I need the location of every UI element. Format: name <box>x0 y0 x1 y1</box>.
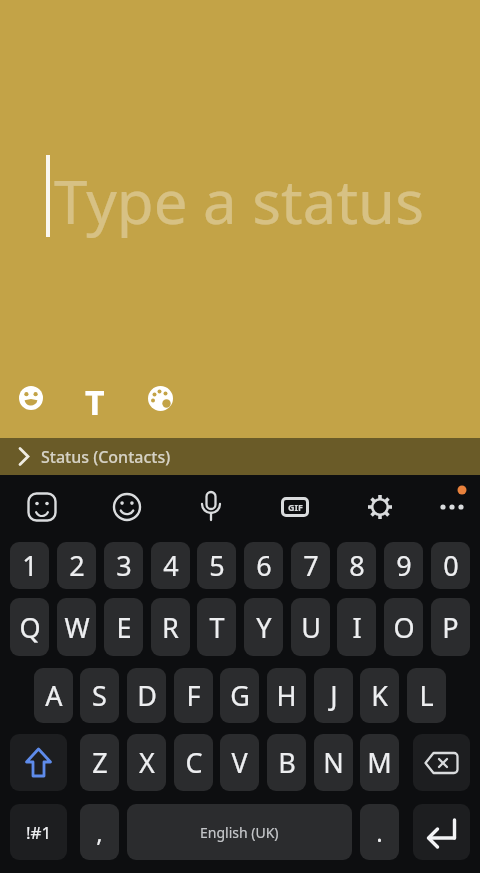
button[interactable] <box>428 483 476 531</box>
staticText: GIF <box>288 501 303 513</box>
button[interactable]: M <box>360 734 399 791</box>
button[interactable]: Status (Contacts) <box>0 438 480 475</box>
button[interactable]: J <box>314 668 353 723</box>
button[interactable]: L <box>407 668 446 723</box>
staticText: 3 <box>116 547 132 584</box>
staticText: !#1 <box>26 821 52 844</box>
button[interactable]: K <box>360 668 399 723</box>
staticText: F <box>186 677 201 714</box>
button[interactable] <box>187 483 235 531</box>
button[interactable]: S <box>80 668 119 723</box>
button[interactable]: 1 <box>10 542 49 589</box>
staticText: Y <box>256 609 272 646</box>
button[interactable]: !#1 <box>10 804 67 860</box>
staticText: 0 <box>443 547 459 584</box>
staticText: Status (Contacts) <box>41 446 171 468</box>
button[interactable] <box>413 734 470 791</box>
button[interactable]: R <box>151 598 190 656</box>
button[interactable]: A <box>34 668 73 723</box>
staticText: 9 <box>396 547 412 584</box>
staticText: C <box>185 744 203 781</box>
staticText: T <box>209 609 225 646</box>
button[interactable]: I <box>337 598 376 656</box>
button[interactable] <box>10 734 67 791</box>
button[interactable]: C <box>174 734 213 791</box>
button[interactable]: H <box>267 668 306 723</box>
staticText: E <box>116 609 132 646</box>
button[interactable]: U <box>291 598 330 656</box>
button[interactable]: E <box>104 598 143 656</box>
button[interactable]: X <box>127 734 166 791</box>
button[interactable]: F <box>174 668 213 723</box>
button[interactable]: 7 <box>291 542 330 589</box>
button[interactable]: B <box>267 734 306 791</box>
staticText: H <box>276 677 297 714</box>
button[interactable]: English (UK) <box>127 804 352 860</box>
staticText: A <box>45 677 63 714</box>
button[interactable]: W <box>57 598 96 656</box>
staticText: W <box>64 609 90 646</box>
staticText: 7 <box>303 547 319 584</box>
button[interactable]: N <box>314 734 353 791</box>
staticText: G <box>230 677 250 714</box>
staticText: J <box>330 677 338 714</box>
staticText: 5 <box>209 547 225 584</box>
button[interactable]: T <box>76 379 114 417</box>
staticText: B <box>278 744 296 781</box>
button[interactable] <box>356 483 404 531</box>
button[interactable]: T <box>197 598 236 656</box>
button[interactable] <box>141 379 179 417</box>
staticText: S <box>92 677 107 714</box>
button[interactable]: 0 <box>431 542 470 589</box>
staticText: N <box>323 744 344 781</box>
staticText: T <box>85 379 105 417</box>
staticText: 6 <box>256 547 272 584</box>
staticText: I <box>352 609 362 646</box>
staticText: Q <box>19 609 41 646</box>
button[interactable]: Y <box>244 598 283 656</box>
button[interactable]: G <box>220 668 259 723</box>
button[interactable] <box>12 379 50 417</box>
button[interactable]: 3 <box>104 542 143 589</box>
staticText: English (UK) <box>200 823 279 842</box>
button[interactable]: O <box>384 598 423 656</box>
button[interactable]: D <box>127 668 166 723</box>
staticText: X <box>139 744 155 781</box>
staticText: 8 <box>349 547 365 584</box>
staticText: R <box>162 609 179 646</box>
button[interactable]: Q <box>10 598 49 656</box>
button[interactable]: 8 <box>337 542 376 589</box>
button[interactable]: V <box>220 734 259 791</box>
button[interactable] <box>18 483 66 531</box>
staticText: M <box>367 744 392 781</box>
staticText: K <box>371 677 388 714</box>
staticText: 1 <box>22 547 38 584</box>
button[interactable]: 4 <box>151 542 190 589</box>
staticText: 4 <box>163 547 179 584</box>
staticText: 2 <box>69 547 85 584</box>
button[interactable] <box>271 483 319 531</box>
staticText: . <box>376 816 383 849</box>
staticText: P <box>442 609 459 646</box>
button[interactable]: 2 <box>57 542 96 589</box>
staticText: , <box>96 816 103 849</box>
staticText: V <box>231 744 248 781</box>
staticText: D <box>137 677 157 714</box>
button[interactable] <box>103 483 151 531</box>
staticText: O <box>393 609 415 646</box>
button[interactable]: . <box>360 804 399 860</box>
staticText: Z <box>92 744 108 781</box>
button[interactable]: P <box>431 598 470 656</box>
button[interactable]: 5 <box>197 542 236 589</box>
button[interactable]: 9 <box>384 542 423 589</box>
staticText: U <box>301 609 321 646</box>
button[interactable]: 6 <box>244 542 283 589</box>
staticText: Type a status <box>54 160 424 242</box>
staticText: L <box>419 677 434 714</box>
button[interactable]: , <box>80 804 119 860</box>
button[interactable]: Z <box>80 734 119 791</box>
button[interactable] <box>413 804 470 860</box>
